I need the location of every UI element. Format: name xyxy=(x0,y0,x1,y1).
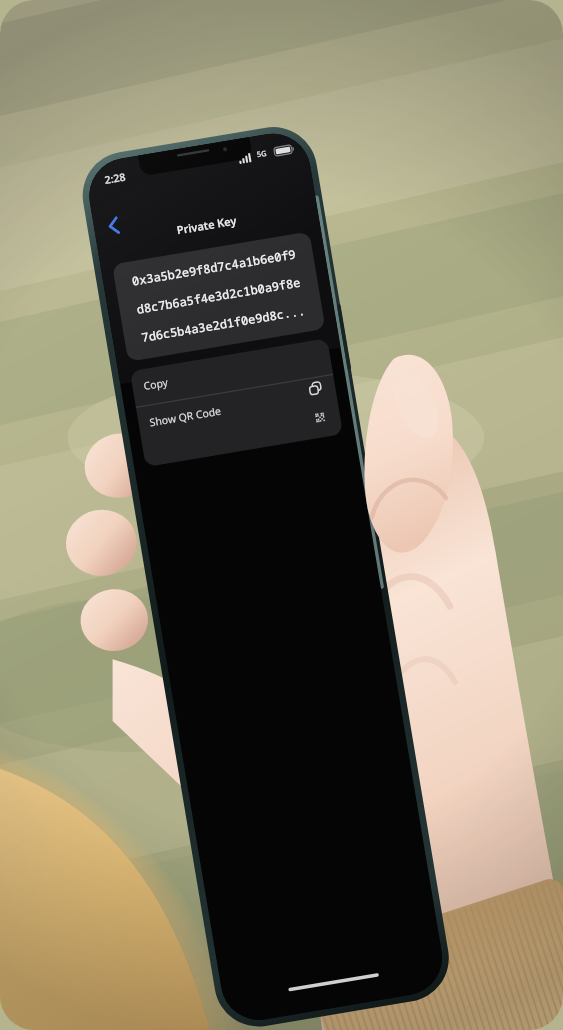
button[interactable]: Copy xyxy=(190,344,386,372)
button[interactable]: Show QR Code xyxy=(187,374,383,402)
button[interactable]: Show QR code xyxy=(352,402,376,426)
button[interactable]: Back xyxy=(203,217,233,243)
button[interactable]: Copy private key to clipboard xyxy=(355,372,381,398)
